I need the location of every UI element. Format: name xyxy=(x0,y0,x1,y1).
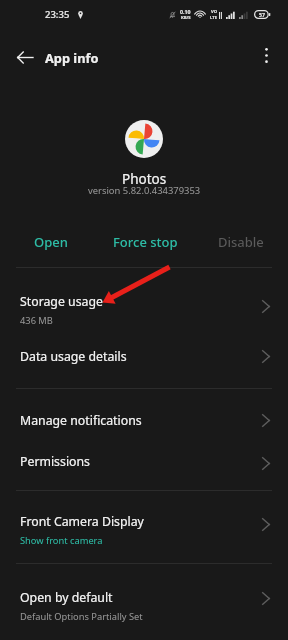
button[interactable]: Back xyxy=(8,40,42,74)
staticText: Open xyxy=(34,233,68,251)
button[interactable]: Permissions xyxy=(0,443,288,479)
button[interactable]: Open by default xyxy=(0,586,288,626)
staticText: Open by default xyxy=(20,589,113,606)
button[interactable]: Front Camera Display xyxy=(0,510,288,550)
staticText: LTE xyxy=(210,15,218,21)
staticText: Front Camera Display xyxy=(20,513,144,530)
button[interactable]: Disable xyxy=(193,230,288,254)
staticText: VO xyxy=(211,9,217,15)
staticText: Storage usage xyxy=(20,293,103,310)
button[interactable]: Force stop xyxy=(98,230,193,254)
staticText: 23:35 xyxy=(45,8,70,21)
staticText: Manage notifications xyxy=(20,412,142,429)
staticText: Permissions xyxy=(20,453,91,470)
staticText: Data usage details xyxy=(20,348,127,365)
staticText: Show front camera xyxy=(20,534,103,547)
button[interactable]: Open xyxy=(4,230,98,254)
staticText: Force stop xyxy=(113,233,178,251)
staticText: KB/S xyxy=(181,15,191,21)
button[interactable]: Storage usage xyxy=(0,290,288,330)
staticText: 0.10 xyxy=(180,8,191,15)
staticText: Disable xyxy=(218,233,264,251)
staticText: 436 MB xyxy=(20,314,53,327)
staticText: Default Options Partially Set xyxy=(20,610,143,623)
button[interactable]: More options xyxy=(254,45,278,69)
staticText: version 5.82.0.434379353 xyxy=(88,184,201,197)
staticText: 57 xyxy=(259,11,265,18)
staticText: App info xyxy=(45,49,99,66)
button[interactable]: Manage notifications xyxy=(0,402,288,438)
staticText: Photos xyxy=(122,170,167,188)
button[interactable]: Data usage details xyxy=(0,338,288,374)
